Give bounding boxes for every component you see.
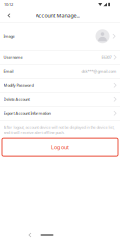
button[interactable]: Delete Account	[0, 92, 120, 106]
button[interactable]: Export Account Information	[0, 106, 120, 120]
staticText: Username	[3, 55, 22, 60]
staticText: Account Manage...	[35, 12, 79, 19]
button[interactable]: Back	[25, 230, 35, 240]
button[interactable]: Username	[0, 50, 120, 64]
staticText: Delete Account	[3, 97, 29, 102]
staticText: Log out	[51, 144, 69, 151]
staticText: dsk***@gmail.com	[81, 69, 116, 74]
button[interactable]: Modify Password	[0, 78, 120, 92]
staticText: Export Account Information	[3, 111, 50, 116]
staticText: Modify Password	[3, 83, 33, 88]
staticText: Email	[3, 69, 13, 74]
button[interactable]: Email	[0, 64, 120, 78]
button[interactable]: Back	[0, 9, 18, 22]
staticText: E6307	[101, 55, 111, 60]
staticText: 10:12	[4, 2, 13, 7]
staticText: Image	[3, 34, 14, 39]
button[interactable]: Log out	[2, 138, 118, 156]
button[interactable]: Image	[0, 22, 120, 50]
staticText: After logout, account device will not be…	[3, 124, 114, 135]
